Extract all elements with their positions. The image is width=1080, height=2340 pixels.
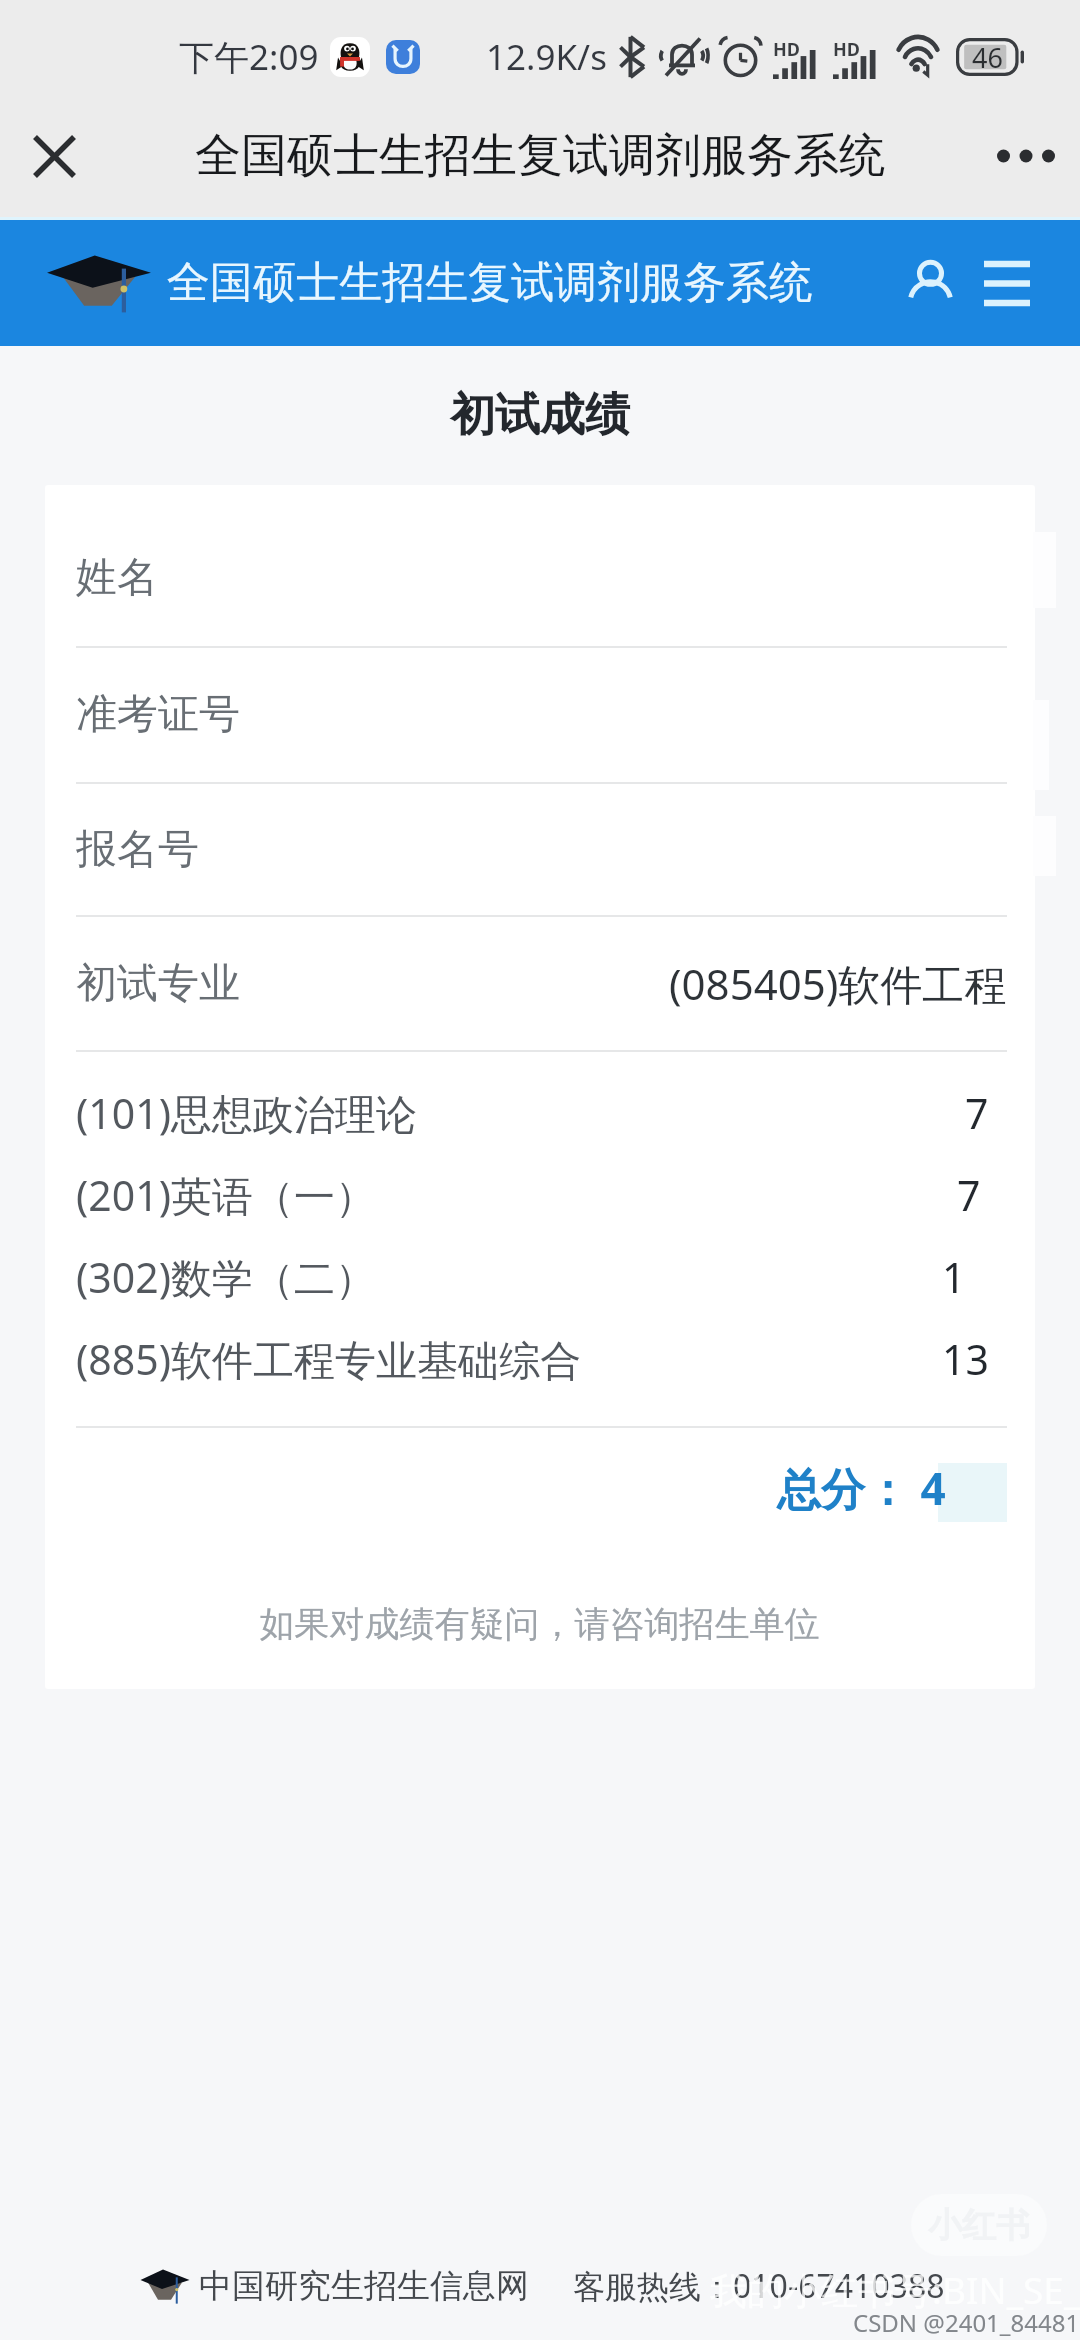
staticText: 中国研究生招生信息网 [199,2265,529,2307]
button[interactable]: 姓名 [76,510,1007,646]
button[interactable]: 中国研究生招生信息网 [140,2265,529,2307]
button[interactable]: Menu [970,246,1044,320]
staticText: HD [773,37,800,62]
staticText: 如果对成绩有疑问，请咨询招生单位 [74,1602,1005,1646]
button[interactable]: 准考证号 [76,648,1007,782]
staticText: 下午2:09 [179,33,319,81]
staticText: 初试成绩 [0,387,1080,444]
button[interactable]: (885)软件工程专业基础综合 [76,1322,1007,1404]
staticText: (885)软件工程专业基础综合 [76,1331,581,1387]
staticText: (101)思想政治理论 [76,1085,417,1141]
staticText: 1 [942,1249,966,1305]
staticText: 我的小红书号:BIN_SE_885 [710,2264,1080,2315]
staticText: 7 [957,1167,981,1223]
staticText: CSDN @2401_84481255 [853,2306,1080,2339]
staticText: 全国硕士生招生复试调剂服务系统 [195,127,885,185]
button[interactable]: (302)数学（二） [76,1240,1007,1322]
staticText: 7 [965,1085,989,1141]
staticText: 全国硕士生招生复试调剂服务系统 [167,256,812,310]
staticText: (085405)软件工程 [669,955,1007,1012]
staticText: 姓名 [76,552,158,604]
button[interactable]: (201)英语（一） [76,1158,1007,1240]
button[interactable]: More options [986,116,1066,196]
button[interactable]: 初试专业 [76,917,1007,1050]
button[interactable]: 客服热线：010-67410388 [573,2264,945,2308]
button[interactable]: Account [890,243,970,323]
staticText: HD [833,37,860,62]
staticText: 13 [942,1331,989,1387]
staticText: 12.9K/s [486,33,607,81]
staticText: 报名号 [76,824,199,876]
button[interactable]: 报名号 [76,784,1007,915]
button[interactable]: (101)思想政治理论 [76,1076,1007,1158]
staticText: (201)英语（一） [76,1167,376,1223]
staticText: 总分： 4 [777,1458,946,1518]
staticText: (302)数学（二） [76,1249,376,1305]
staticText: 小红书 [928,2204,1030,2247]
staticText: 准考证号 [76,689,240,741]
staticText: 初试专业 [76,958,240,1010]
staticText: 46 [972,39,1003,76]
button[interactable]: Close [14,116,94,196]
